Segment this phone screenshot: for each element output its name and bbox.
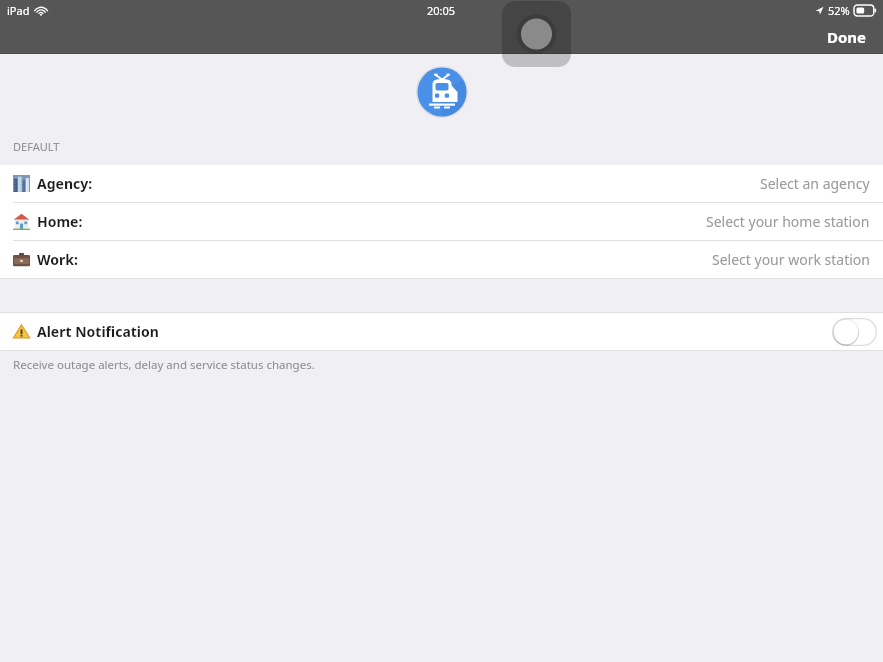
staticText: Receive outage alerts, delay and service…	[13, 357, 315, 373]
button[interactable]: Work:	[0, 241, 883, 278]
staticText: DEFAULT	[13, 139, 60, 154]
button[interactable]: Agency:	[0, 165, 883, 202]
button[interactable]: Home:	[0, 203, 883, 240]
staticText: Done	[827, 27, 867, 47]
staticText: Select your work station	[712, 250, 870, 269]
button[interactable]: Done	[811, 22, 883, 52]
button[interactable]: Alert Notification	[0, 313, 883, 350]
staticText: Select your home station	[706, 212, 870, 231]
staticText: Work:	[37, 250, 78, 269]
staticText: 20:05	[427, 3, 456, 18]
staticText: Home:	[37, 212, 83, 231]
staticText: 52%	[828, 3, 850, 18]
staticText: iPad	[7, 3, 30, 18]
staticText: Alert Notification	[37, 322, 159, 341]
staticText: Select an agency	[760, 174, 870, 193]
button[interactable]: Alert Notification toggle	[832, 318, 877, 346]
staticText: Agency:	[37, 174, 93, 193]
